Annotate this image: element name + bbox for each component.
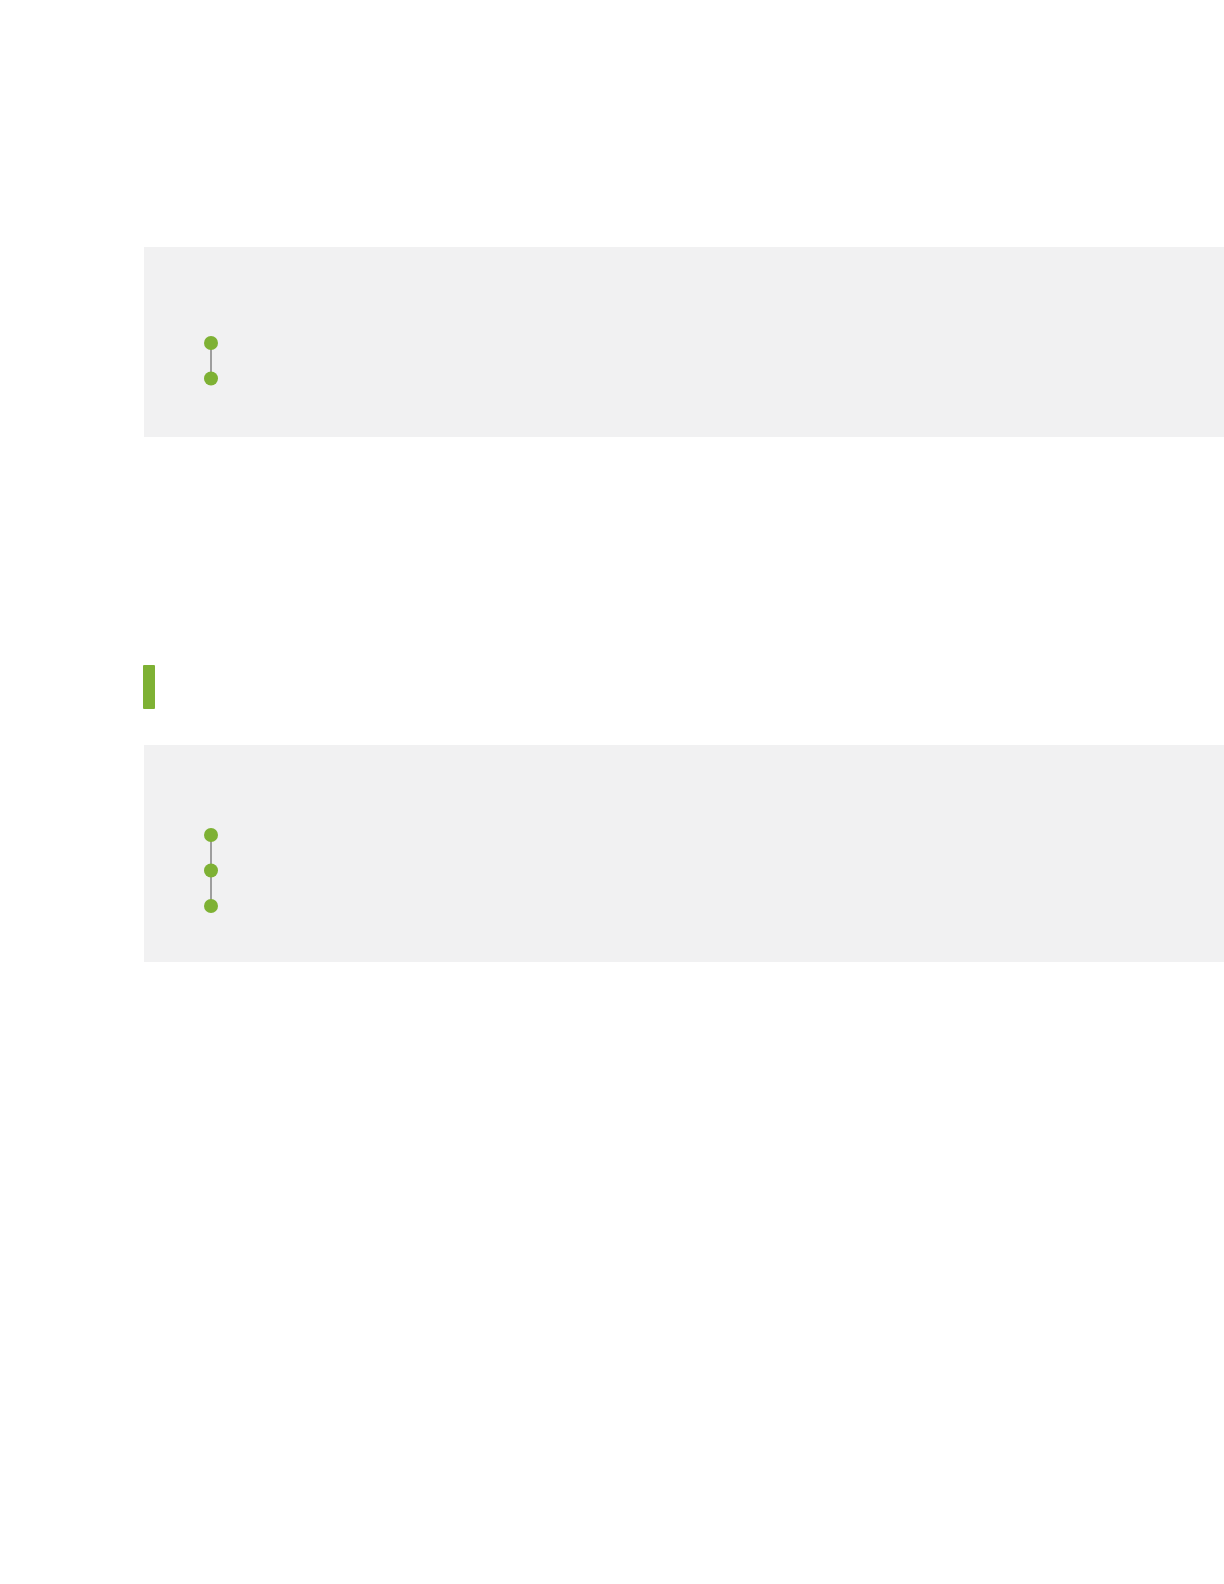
button[interactable]: Route stops <box>144 745 1224 962</box>
button[interactable]: Section marker <box>143 665 155 709</box>
button[interactable]: Schedule summary <box>144 247 1224 437</box>
